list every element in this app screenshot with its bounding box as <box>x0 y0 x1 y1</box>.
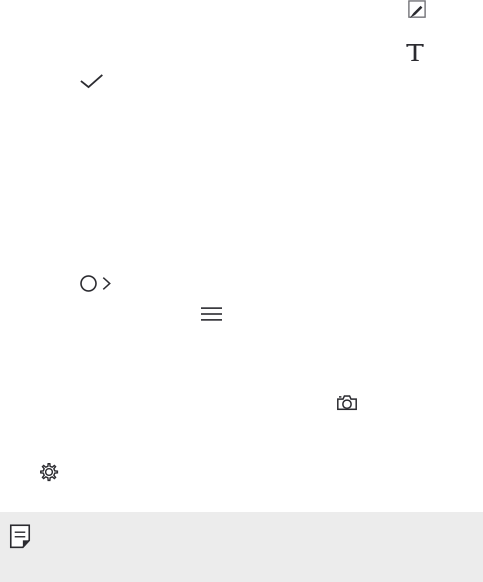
button[interactable]: List <box>201 307 222 321</box>
button[interactable]: Status <box>81 276 111 291</box>
button[interactable]: Notes <box>0 512 94 550</box>
button[interactable]: Camera <box>337 394 357 411</box>
button[interactable]: Compose <box>408 0 426 18</box>
button[interactable]: Text format <box>406 44 424 61</box>
button[interactable]: Settings <box>40 463 58 481</box>
